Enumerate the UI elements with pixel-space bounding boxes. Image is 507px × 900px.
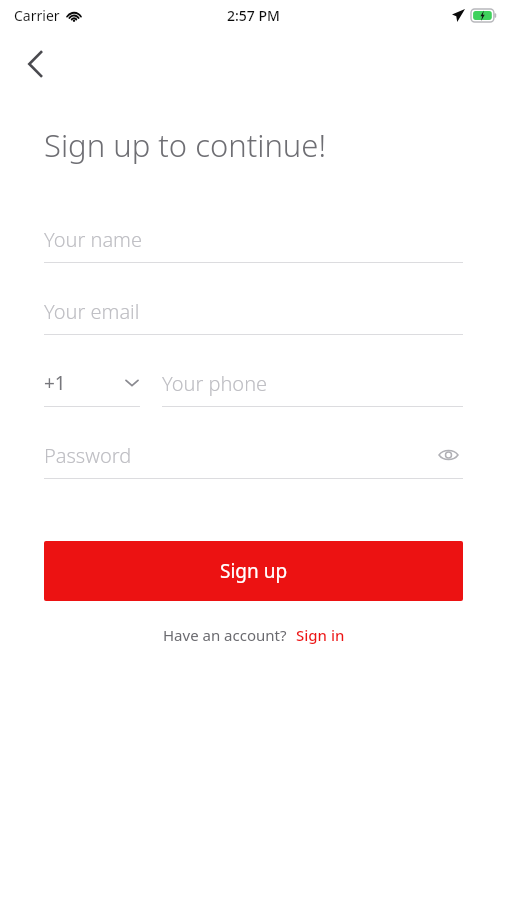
staticText: Your phone: [162, 370, 268, 397]
button[interactable]: Sign up: [44, 541, 463, 601]
button[interactable]: Your phone: [162, 367, 463, 407]
button[interactable]: Sign in: [296, 625, 345, 645]
staticText: +1: [44, 370, 66, 396]
button[interactable]: Your email: [44, 295, 463, 335]
staticText: Your name: [44, 226, 142, 253]
staticText: Password: [44, 442, 132, 469]
button[interactable]: Back: [14, 42, 58, 86]
staticText: Sign in: [296, 625, 345, 645]
staticText: Sign up: [220, 558, 288, 584]
button[interactable]: Your name: [44, 223, 463, 263]
staticText: Your email: [44, 298, 140, 325]
staticText: 2:57 PM: [227, 6, 280, 25]
button[interactable]: Password: [44, 439, 463, 471]
button[interactable]: +1: [44, 367, 140, 407]
button[interactable]: Show password: [433, 440, 463, 470]
staticText: Have an account?: [163, 625, 287, 645]
staticText: Sign up to continue!: [44, 124, 327, 166]
staticText: Carrier: [14, 6, 60, 25]
